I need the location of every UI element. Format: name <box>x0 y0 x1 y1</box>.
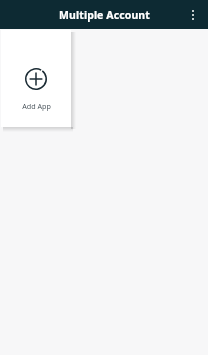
staticText: Add App <box>22 101 51 111</box>
staticText: Multiple Account <box>59 8 150 22</box>
button[interactable]: Add App <box>1 30 71 127</box>
button[interactable]: More options <box>181 3 205 27</box>
